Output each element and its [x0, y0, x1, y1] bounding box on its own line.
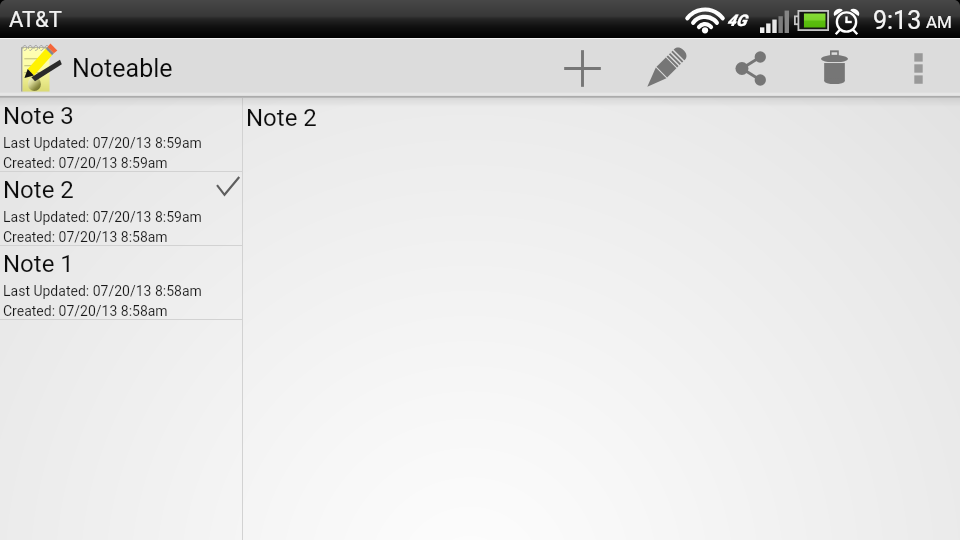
button[interactable]: Delete — [792, 38, 876, 98]
button[interactable]: Noteable, home — [0, 38, 185, 98]
staticText: Note 2 — [246, 104, 317, 132]
staticText: AT&T — [9, 7, 62, 33]
staticText: Last Updated: 07/20/13 8:59am — [3, 135, 202, 151]
staticText: Note 2 — [3, 176, 74, 204]
staticText: Created: 07/20/13 8:58am — [3, 303, 168, 319]
staticText: Noteable — [72, 54, 173, 83]
staticText: Note 1 — [3, 250, 74, 278]
staticText: Created: 07/20/13 8:59am — [3, 155, 168, 171]
staticText: Created: 07/20/13 8:58am — [3, 229, 168, 245]
button[interactable]: Edit — [624, 38, 708, 98]
button[interactable]: Add — [540, 38, 624, 98]
staticText: 9:13 — [873, 6, 922, 35]
button[interactable]: Share — [708, 38, 792, 98]
staticText: Last Updated: 07/20/13 8:58am — [3, 283, 202, 299]
staticText: Note 3 — [3, 102, 74, 130]
button[interactable]: Note 1 — [0, 246, 242, 320]
button[interactable]: More options — [876, 38, 960, 98]
button[interactable]: Note 2 — [0, 172, 242, 246]
staticText: Last Updated: 07/20/13 8:59am — [3, 209, 202, 225]
staticText: AM — [926, 12, 952, 32]
staticText: 4G — [727, 11, 747, 30]
button[interactable]: Note 3 — [0, 98, 242, 172]
